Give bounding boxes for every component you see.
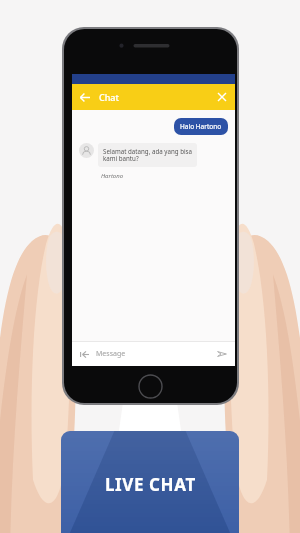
staticText: Selamat datang, ada yang bisa kami bantu… — [103, 147, 192, 163]
button[interactable]: Message — [96, 349, 215, 359]
button[interactable]: Selamat datang, ada yang bisa kami bantu… — [98, 143, 197, 167]
staticText: Chat — [99, 91, 119, 103]
button[interactable]: Halo Hartono — [174, 118, 228, 135]
button[interactable]: LIVE CHAT — [61, 431, 239, 533]
staticText: Hartono — [101, 172, 124, 180]
button[interactable]: Send — [215, 347, 229, 361]
button[interactable]: Close — [213, 88, 231, 106]
button[interactable]: Reply — [78, 348, 91, 361]
staticText: LIVE CHAT — [105, 473, 196, 496]
staticText: Halo Hartono — [180, 122, 222, 131]
staticText: Message — [96, 349, 126, 359]
button[interactable]: Back — [75, 88, 93, 106]
